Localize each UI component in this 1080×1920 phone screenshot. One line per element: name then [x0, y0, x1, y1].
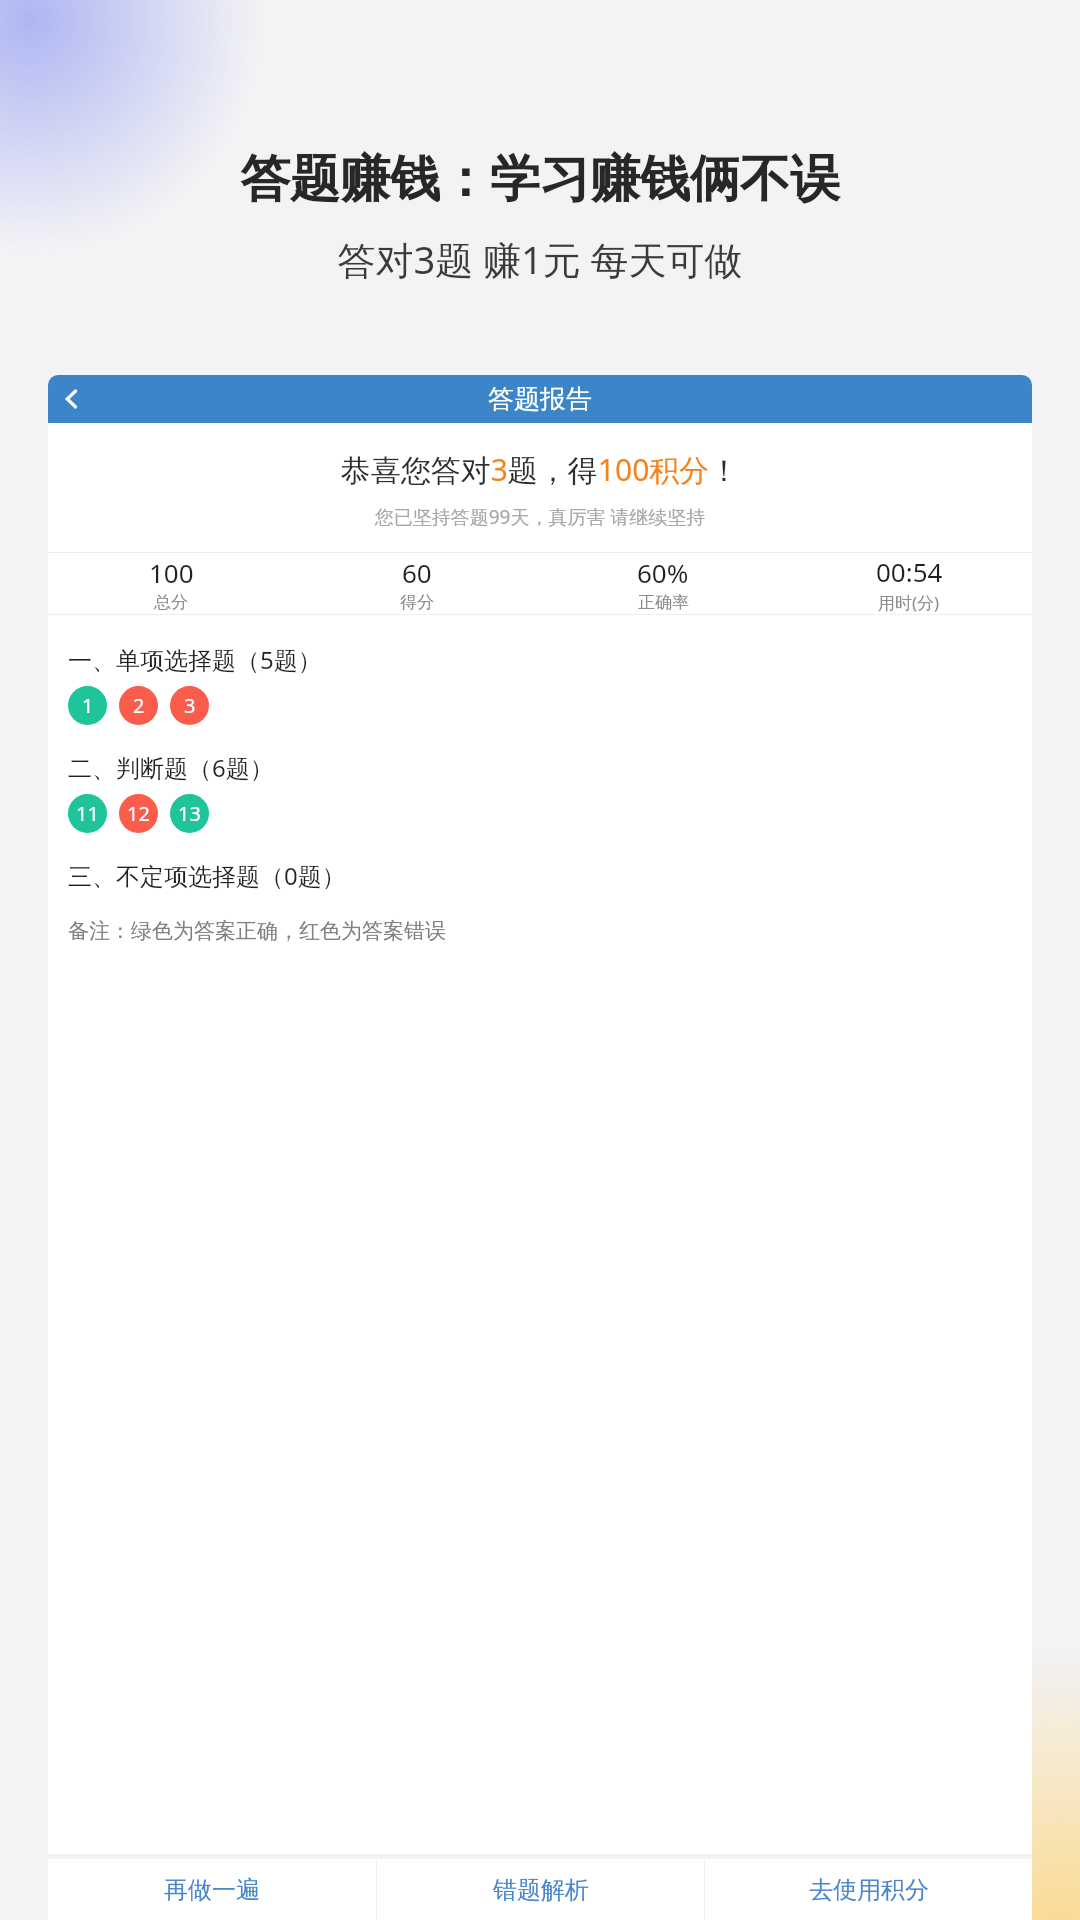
staticText: 您已坚持答题99天，真厉害 请继续坚持	[48, 504, 1032, 530]
staticText: 60%	[637, 555, 689, 590]
staticText: 2	[133, 692, 145, 719]
button[interactable]: 去使用积分	[705, 1859, 1032, 1920]
staticText: 答题报告	[488, 383, 592, 416]
staticText: 再做一遍	[164, 1875, 260, 1905]
staticText: 3	[184, 692, 196, 719]
staticText: 正确率	[638, 592, 689, 613]
staticText: 12	[127, 800, 150, 827]
button[interactable]: 11	[68, 794, 107, 833]
staticText: 三、不定项选择题（0题）	[68, 859, 346, 892]
button[interactable]: 再做一遍	[48, 1859, 376, 1920]
staticText: 答题赚钱：学习赚钱俩不误	[0, 148, 1080, 211]
staticText: 恭喜您答对3题，得100积分！	[48, 449, 1032, 490]
button[interactable]: 13	[170, 794, 209, 833]
staticText: 13	[178, 800, 201, 827]
button[interactable]: 错题解析	[377, 1859, 704, 1920]
staticText: 60	[402, 555, 432, 590]
staticText: 答对3题 赚1元 每天可做	[0, 233, 1080, 285]
button[interactable]: 12	[119, 794, 158, 833]
staticText: 去使用积分	[809, 1875, 929, 1905]
staticText: 备注：绿色为答案正确，红色为答案错误	[68, 918, 446, 944]
staticText: 总分	[154, 592, 188, 613]
staticText: 用时(分)	[878, 591, 940, 614]
staticText: 一、单项选择题（5题）	[68, 643, 322, 676]
staticText: 100	[149, 555, 194, 590]
staticText: 二、判断题（6题）	[68, 751, 274, 784]
button[interactable]: 3	[170, 686, 209, 725]
button[interactable]: 1	[68, 686, 107, 725]
staticText: 得分	[400, 592, 434, 613]
button[interactable]: 返回	[48, 375, 96, 423]
staticText: 1	[82, 692, 94, 719]
staticText: 00:54	[876, 554, 943, 589]
staticText: 错题解析	[493, 1875, 589, 1905]
staticText: 11	[76, 800, 99, 827]
button[interactable]: 2	[119, 686, 158, 725]
